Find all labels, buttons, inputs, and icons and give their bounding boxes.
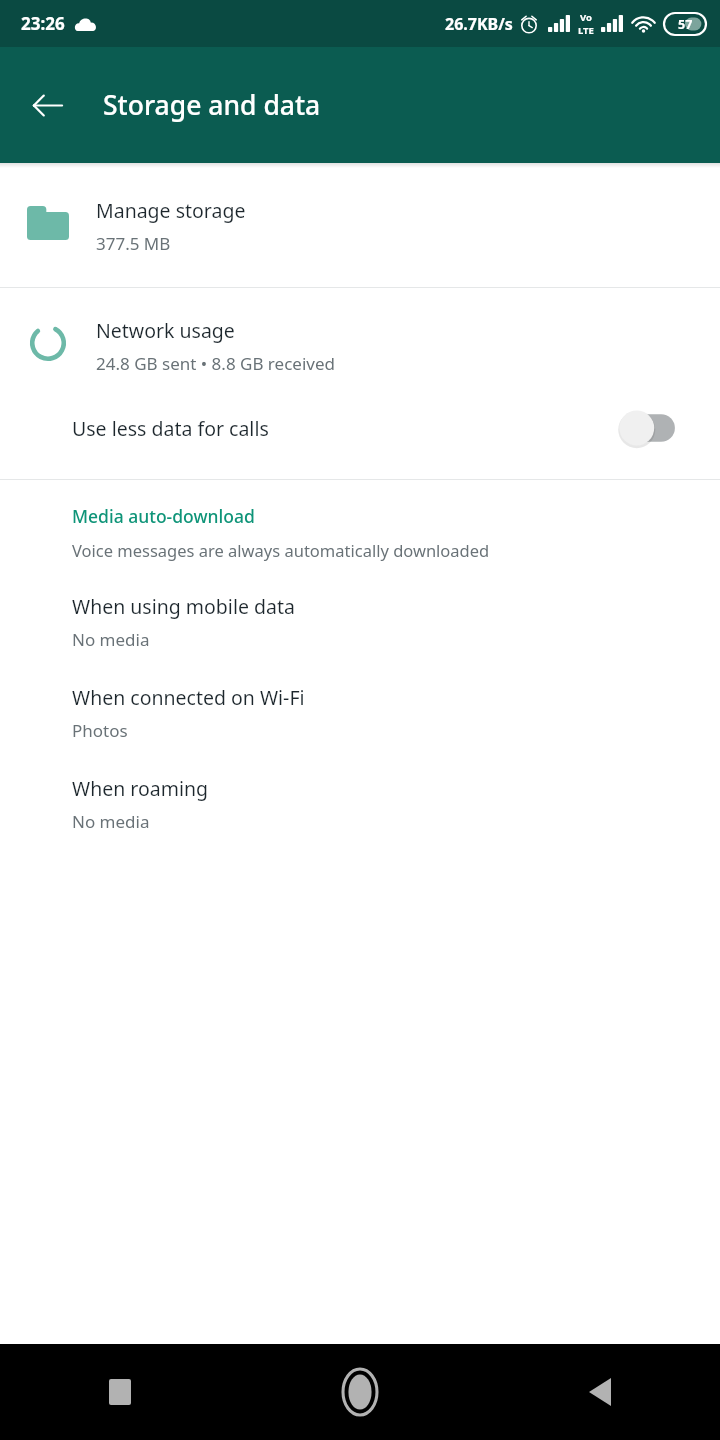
button[interactable]: Network usage	[0, 310, 720, 381]
button[interactable]: Use less data for calls	[0, 399, 720, 457]
staticText: Media auto-download	[72, 504, 255, 528]
button[interactable]: Back	[19, 77, 75, 133]
button[interactable]: When connected on Wi-Fi	[0, 680, 720, 746]
staticText: Manage storage	[96, 197, 246, 224]
staticText: 57	[678, 16, 693, 33]
button[interactable]: Recent apps	[0, 1344, 240, 1440]
staticText: 377.5 MB	[96, 232, 171, 255]
staticText: Storage and data	[103, 87, 321, 123]
button[interactable]: When using mobile data	[0, 589, 720, 655]
staticText: When connected on Wi-Fi	[72, 684, 305, 711]
staticText: 24.8 GB sent • 8.8 GB received	[96, 352, 335, 375]
button[interactable]: When roaming	[0, 771, 720, 837]
staticText: No media	[72, 810, 150, 833]
staticText: 23:26	[21, 12, 65, 35]
staticText: When roaming	[72, 775, 209, 802]
staticText: Voice messages are always automatically …	[72, 539, 490, 561]
staticText: When using mobile data	[72, 593, 295, 620]
staticText: 26.7KB/s	[445, 13, 513, 35]
staticText: Vo	[580, 11, 592, 24]
button[interactable]: Home	[240, 1344, 480, 1440]
staticText: Use less data for calls	[72, 415, 269, 442]
button[interactable]: Manage storage	[0, 190, 720, 261]
staticText: No media	[72, 628, 150, 651]
staticText: Photos	[72, 719, 128, 742]
button[interactable]: Back	[480, 1344, 720, 1440]
staticText: LTE	[578, 24, 594, 37]
staticText: Network usage	[96, 317, 235, 344]
